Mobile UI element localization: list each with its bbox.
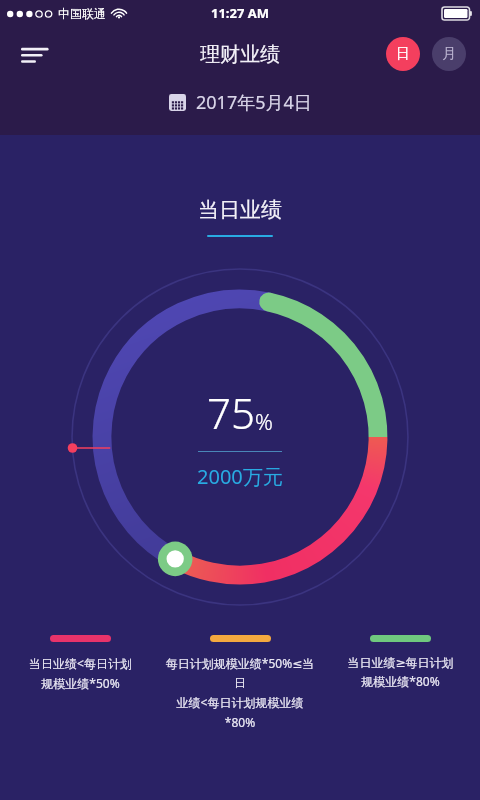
staticText: 75 [207,384,255,441]
button[interactable]: 月 [432,37,466,71]
staticText: 当日业绩 [198,197,282,223]
button[interactable]: 当日业绩<每日计划 规模业绩*50% [0,635,160,691]
staticText: 当日业绩≥每日计划 规模业绩*80% [347,655,454,689]
button[interactable]: 当日业绩≥每日计划 规模业绩*80% [320,635,480,689]
staticText: 中国联通 [58,6,106,21]
staticText: 每日计划规模业绩*50%≤当日 业绩<每日计划规模业绩*80% [164,655,316,730]
staticText: 理财业绩 [200,42,280,67]
staticText: 日 [396,45,410,63]
staticText: 11:27 AM [211,4,270,22]
staticText: 当日业绩<每日计划 规模业绩*50% [29,655,132,691]
staticText: 月 [442,45,456,63]
button[interactable]: 每日计划规模业绩*50%≤当日 业绩<每日计划规模业绩*80% [160,635,320,730]
staticText: 2000万元 [197,463,283,490]
button[interactable]: 2017年5月4日 [165,86,316,119]
staticText: % [255,406,273,436]
button[interactable]: Menu [12,30,60,78]
staticText: 2017年5月4日 [196,90,312,115]
button[interactable]: 日 [386,37,420,71]
